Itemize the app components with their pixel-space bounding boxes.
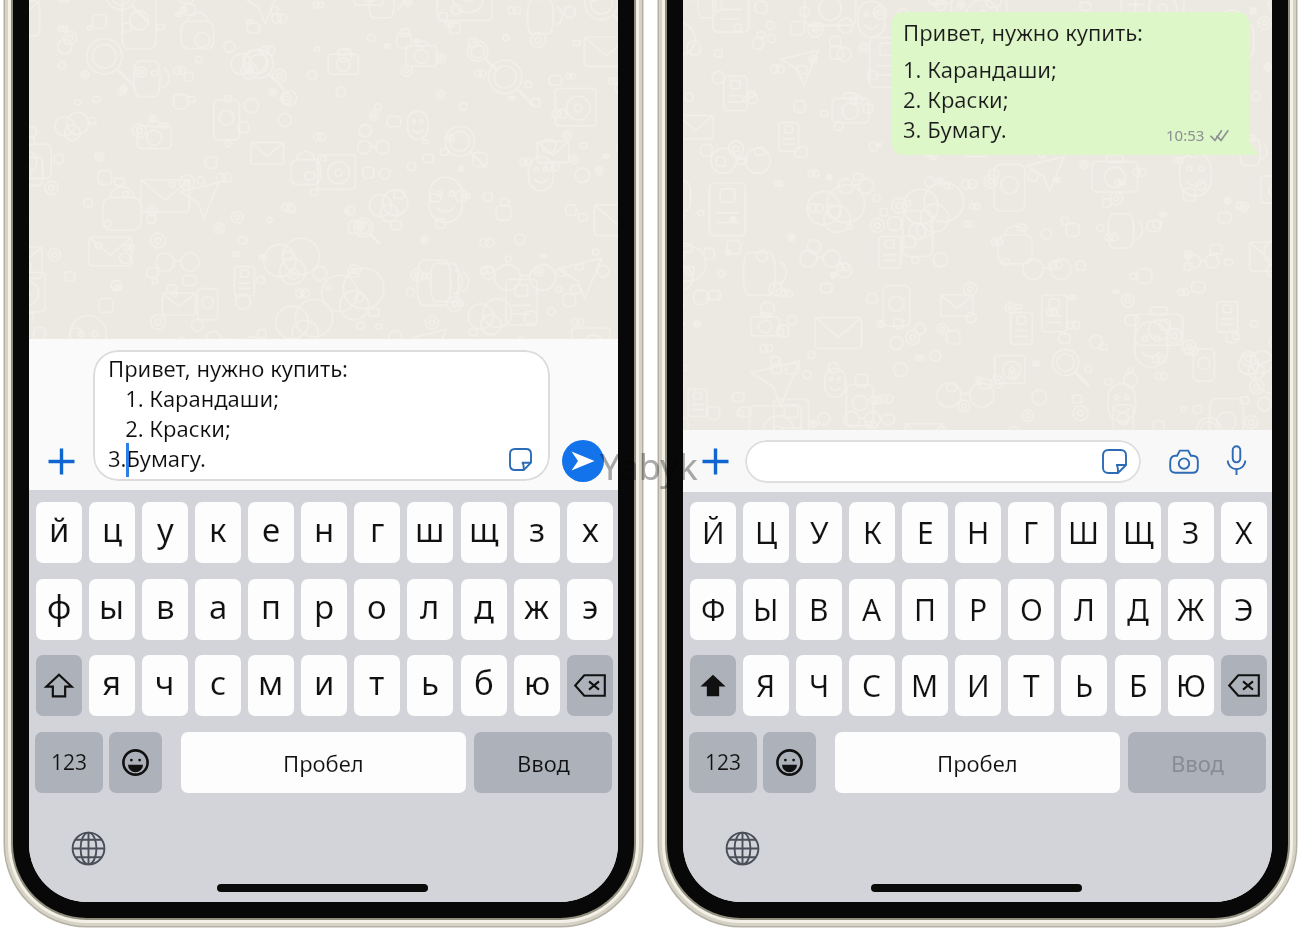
button[interactable]: Ы bbox=[743, 579, 789, 640]
button[interactable]: Г bbox=[1008, 502, 1054, 563]
button[interactable]: р bbox=[301, 579, 347, 640]
button[interactable]: л bbox=[407, 579, 453, 640]
button[interactable]: Change keyboard bbox=[725, 831, 760, 866]
button[interactable]: Camera bbox=[1169, 448, 1199, 474]
button[interactable]: Х bbox=[1221, 502, 1267, 563]
button[interactable]: ф bbox=[36, 579, 82, 640]
button[interactable]: Shift bbox=[36, 655, 82, 716]
staticText: э bbox=[582, 584, 599, 629]
button[interactable]: В bbox=[796, 579, 842, 640]
staticText: л bbox=[420, 584, 440, 629]
button[interactable]: Э bbox=[1221, 579, 1267, 640]
staticText: Т bbox=[1023, 665, 1040, 706]
button[interactable]: К bbox=[849, 502, 895, 563]
button[interactable]: я bbox=[89, 655, 135, 716]
staticText: 123 bbox=[51, 748, 88, 777]
button[interactable]: Sticker bbox=[745, 440, 1141, 483]
button[interactable]: д bbox=[461, 579, 507, 640]
button[interactable]: Attach bbox=[700, 446, 730, 476]
button[interactable]: П bbox=[902, 579, 948, 640]
button[interactable]: О bbox=[1008, 579, 1054, 640]
staticText: я bbox=[102, 660, 122, 705]
button[interactable]: Н bbox=[955, 502, 1001, 563]
button[interactable]: Shift bbox=[690, 655, 736, 716]
button[interactable]: ш bbox=[407, 502, 453, 563]
button[interactable]: 123 bbox=[35, 732, 103, 793]
staticText: Ж bbox=[1177, 589, 1205, 630]
button[interactable]: ж bbox=[514, 579, 560, 640]
staticText: в bbox=[156, 584, 175, 629]
button[interactable]: ч bbox=[142, 655, 188, 716]
button[interactable]: Ввод bbox=[474, 732, 612, 793]
button[interactable]: Ц bbox=[743, 502, 789, 563]
button[interactable]: Send bbox=[562, 440, 604, 482]
button[interactable]: Ввод bbox=[1128, 732, 1266, 793]
button[interactable]: ю bbox=[514, 655, 560, 716]
button[interactable]: а bbox=[195, 579, 241, 640]
button[interactable]: З bbox=[1168, 502, 1214, 563]
button[interactable]: б bbox=[461, 655, 507, 716]
button[interactable]: А bbox=[849, 579, 895, 640]
button[interactable]: ц bbox=[89, 502, 135, 563]
button[interactable]: Т bbox=[1008, 655, 1054, 716]
button[interactable]: н bbox=[301, 502, 347, 563]
button[interactable]: к bbox=[195, 502, 241, 563]
button[interactable]: Ш bbox=[1061, 502, 1107, 563]
button[interactable]: Л bbox=[1061, 579, 1107, 640]
button[interactable]: с bbox=[195, 655, 241, 716]
button[interactable]: з bbox=[514, 502, 560, 563]
staticText: В bbox=[809, 589, 829, 630]
button[interactable]: Ч bbox=[796, 655, 842, 716]
button[interactable]: в bbox=[142, 579, 188, 640]
button[interactable]: у bbox=[142, 502, 188, 563]
staticText: б bbox=[474, 660, 494, 705]
button[interactable]: Д bbox=[1115, 579, 1161, 640]
button[interactable]: Пробел bbox=[835, 732, 1120, 793]
button[interactable]: Change keyboard bbox=[71, 831, 106, 866]
button[interactable]: Backspace bbox=[1221, 655, 1267, 716]
button[interactable]: м bbox=[248, 655, 294, 716]
button[interactable]: Ж bbox=[1168, 579, 1214, 640]
button[interactable]: Backspace bbox=[567, 655, 613, 716]
staticText: 1. Карандаши; 2. Краски; 3. Бумагу. bbox=[903, 54, 1057, 144]
button[interactable]: Emoji bbox=[109, 732, 162, 793]
button[interactable]: Ф bbox=[690, 579, 736, 640]
button[interactable]: И bbox=[955, 655, 1001, 716]
staticText: п bbox=[261, 584, 281, 629]
button[interactable]: Е bbox=[902, 502, 948, 563]
button[interactable]: ы bbox=[89, 579, 135, 640]
button[interactable]: п bbox=[248, 579, 294, 640]
button[interactable]: Sticker bbox=[509, 448, 532, 473]
button[interactable]: х bbox=[567, 502, 613, 563]
button[interactable]: Sticker bbox=[1102, 449, 1127, 475]
button[interactable]: Voice message bbox=[1226, 445, 1247, 476]
button[interactable]: 123 bbox=[689, 732, 757, 793]
button[interactable]: Attach bbox=[46, 446, 76, 476]
button[interactable]: Б bbox=[1115, 655, 1161, 716]
button[interactable]: Ю bbox=[1168, 655, 1214, 716]
button[interactable]: Й bbox=[690, 502, 736, 563]
button[interactable]: Р bbox=[955, 579, 1001, 640]
button[interactable]: э bbox=[567, 579, 613, 640]
button[interactable]: У bbox=[796, 502, 842, 563]
button[interactable]: Emoji bbox=[763, 732, 816, 793]
staticText: з bbox=[529, 507, 546, 552]
button[interactable]: Щ bbox=[1115, 502, 1161, 563]
button[interactable]: Ь bbox=[1061, 655, 1107, 716]
staticText: С bbox=[862, 665, 882, 706]
button[interactable]: и bbox=[301, 655, 347, 716]
button[interactable]: Пробел bbox=[181, 732, 466, 793]
button[interactable]: щ bbox=[461, 502, 507, 563]
button[interactable]: т bbox=[354, 655, 400, 716]
button[interactable]: ь bbox=[407, 655, 453, 716]
button[interactable]: М bbox=[902, 655, 948, 716]
button[interactable]: о bbox=[354, 579, 400, 640]
button[interactable]: С bbox=[849, 655, 895, 716]
button[interactable]: Я bbox=[743, 655, 789, 716]
staticText: Ю bbox=[1176, 665, 1206, 706]
staticText: Пробел bbox=[283, 748, 364, 778]
button[interactable]: г bbox=[354, 502, 400, 563]
button[interactable]: е bbox=[248, 502, 294, 563]
button[interactable]: й bbox=[36, 502, 82, 563]
button[interactable]: Привет, нужно купить: 1. Карандаши; 2. К… bbox=[93, 350, 550, 481]
